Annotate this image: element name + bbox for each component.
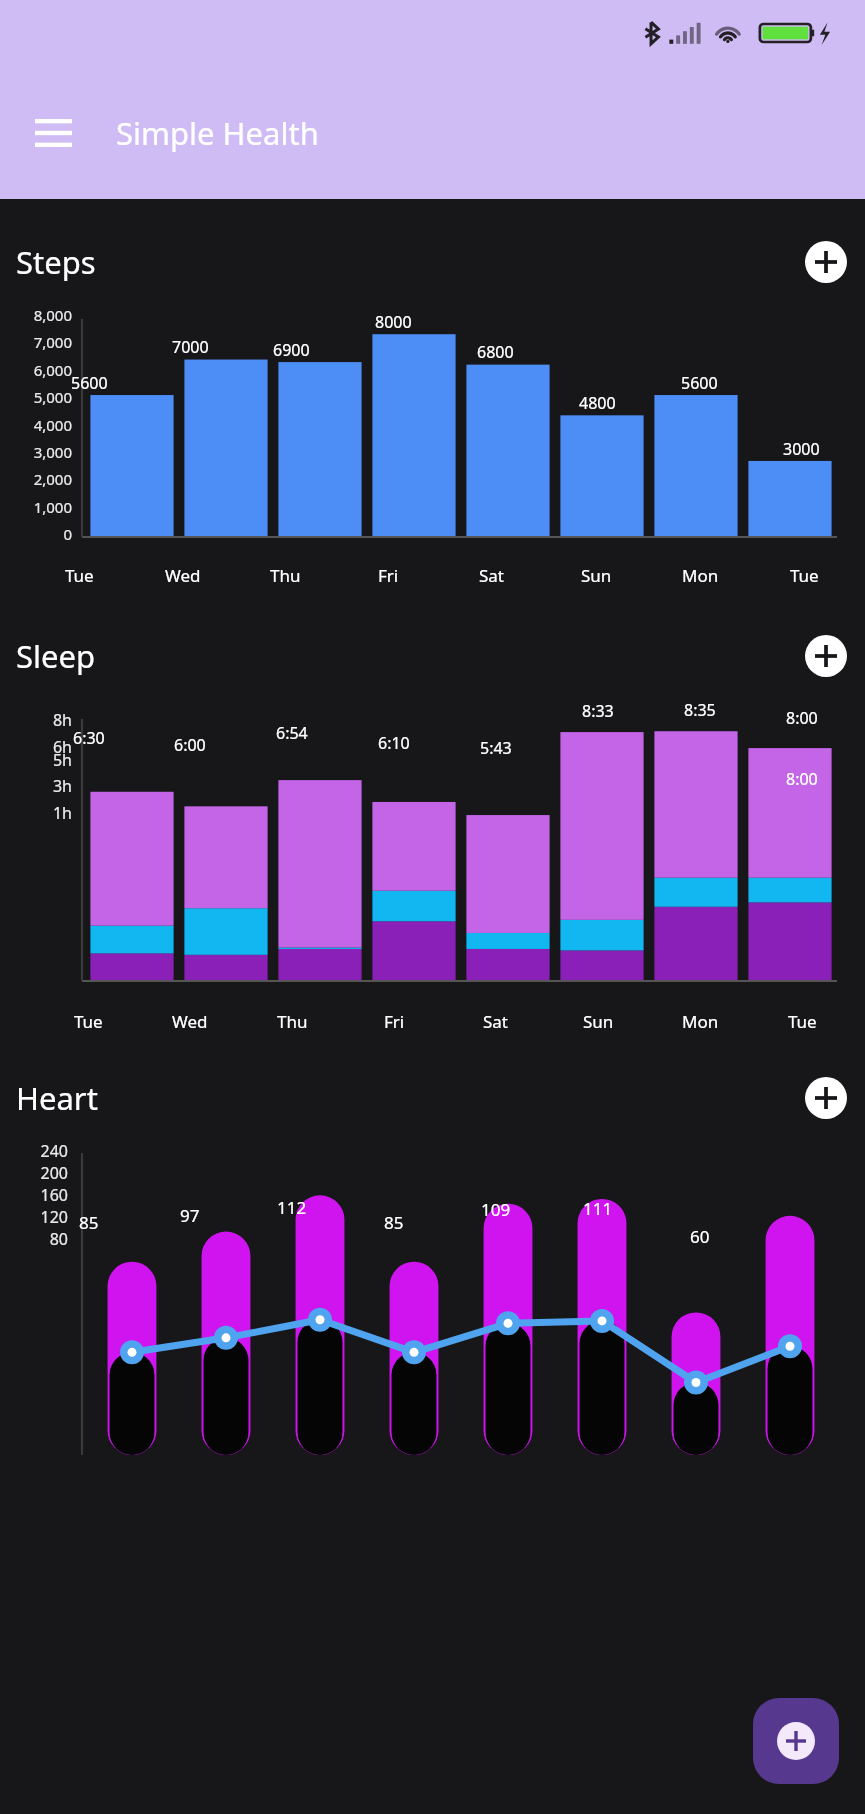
staticText: Heart <box>16 1077 98 1119</box>
staticText: 6:10 <box>378 732 410 754</box>
staticText: 6900 <box>273 339 310 361</box>
staticText: 0 <box>14 524 72 544</box>
staticText: 1h <box>14 802 72 824</box>
staticText: 240 <box>6 1140 68 1162</box>
staticText: Sat <box>479 564 505 587</box>
staticText: 5600 <box>681 372 718 394</box>
staticText: 8h <box>14 709 72 731</box>
staticText: 5:43 <box>480 737 512 759</box>
staticText: Sun <box>583 1010 614 1033</box>
staticText: 6,000 <box>14 360 72 380</box>
staticText: Mon <box>682 564 719 587</box>
staticText: Thu <box>277 1010 308 1033</box>
staticText: 7,000 <box>14 332 72 352</box>
staticText: 200 <box>6 1162 68 1184</box>
button[interactable]: Add entry <box>753 1698 839 1784</box>
staticText: 3,000 <box>14 442 72 462</box>
staticText: 85 <box>384 1211 404 1234</box>
staticText: 5h <box>14 749 72 771</box>
staticText: 5,000 <box>14 387 72 407</box>
staticText: 8:00 <box>786 707 818 729</box>
staticText: 6:30 <box>73 727 105 749</box>
staticText: 1,000 <box>14 497 72 517</box>
staticText: 4,000 <box>14 415 72 435</box>
staticText: Thu <box>270 564 301 587</box>
staticText: Tue <box>74 1010 103 1033</box>
staticText: Sleep <box>16 635 96 677</box>
staticText: 2,000 <box>14 469 72 489</box>
staticText: 3h <box>14 775 72 797</box>
staticText: Sun <box>581 564 612 587</box>
staticText: Fri <box>378 564 399 587</box>
staticText: 8,000 <box>14 305 72 325</box>
staticText: Fri <box>384 1010 405 1033</box>
staticText: 6h <box>14 736 72 758</box>
staticText: 97 <box>180 1204 200 1227</box>
staticText: Simple Health <box>116 112 319 154</box>
staticText: Wed <box>172 1010 208 1033</box>
button[interactable]: Add Heart <box>805 1077 847 1119</box>
staticText: 5600 <box>71 372 108 394</box>
staticText: Mon <box>682 1010 719 1033</box>
staticText: 85 <box>79 1211 99 1234</box>
staticText: 6:54 <box>276 722 308 744</box>
staticText: Sat <box>483 1010 509 1033</box>
staticText: 8:33 <box>582 700 614 722</box>
staticText: 3000 <box>783 438 820 460</box>
staticText: 60 <box>690 1225 710 1248</box>
staticText: 109 <box>481 1198 511 1221</box>
staticText: Tue <box>790 564 819 587</box>
staticText: 6800 <box>477 341 514 363</box>
staticText: Tue <box>65 564 94 587</box>
staticText: 112 <box>277 1196 307 1219</box>
staticText: 8:00 <box>786 768 818 790</box>
staticText: 111 <box>583 1197 613 1220</box>
staticText: Tue <box>788 1010 817 1033</box>
staticText: 8000 <box>375 311 412 333</box>
staticText: 120 <box>6 1206 68 1228</box>
staticText: Steps <box>16 241 96 283</box>
staticText: 80 <box>6 1228 68 1250</box>
button[interactable]: Add Sleep <box>805 635 847 677</box>
staticText: 160 <box>6 1184 68 1206</box>
button[interactable]: Add Steps <box>805 241 847 283</box>
staticText: 7000 <box>172 336 209 358</box>
staticText: Wed <box>165 564 201 587</box>
button[interactable]: Menu <box>22 102 84 164</box>
staticText: 6:00 <box>174 734 206 756</box>
staticText: 8:35 <box>684 699 716 721</box>
staticText: 4800 <box>579 392 616 414</box>
